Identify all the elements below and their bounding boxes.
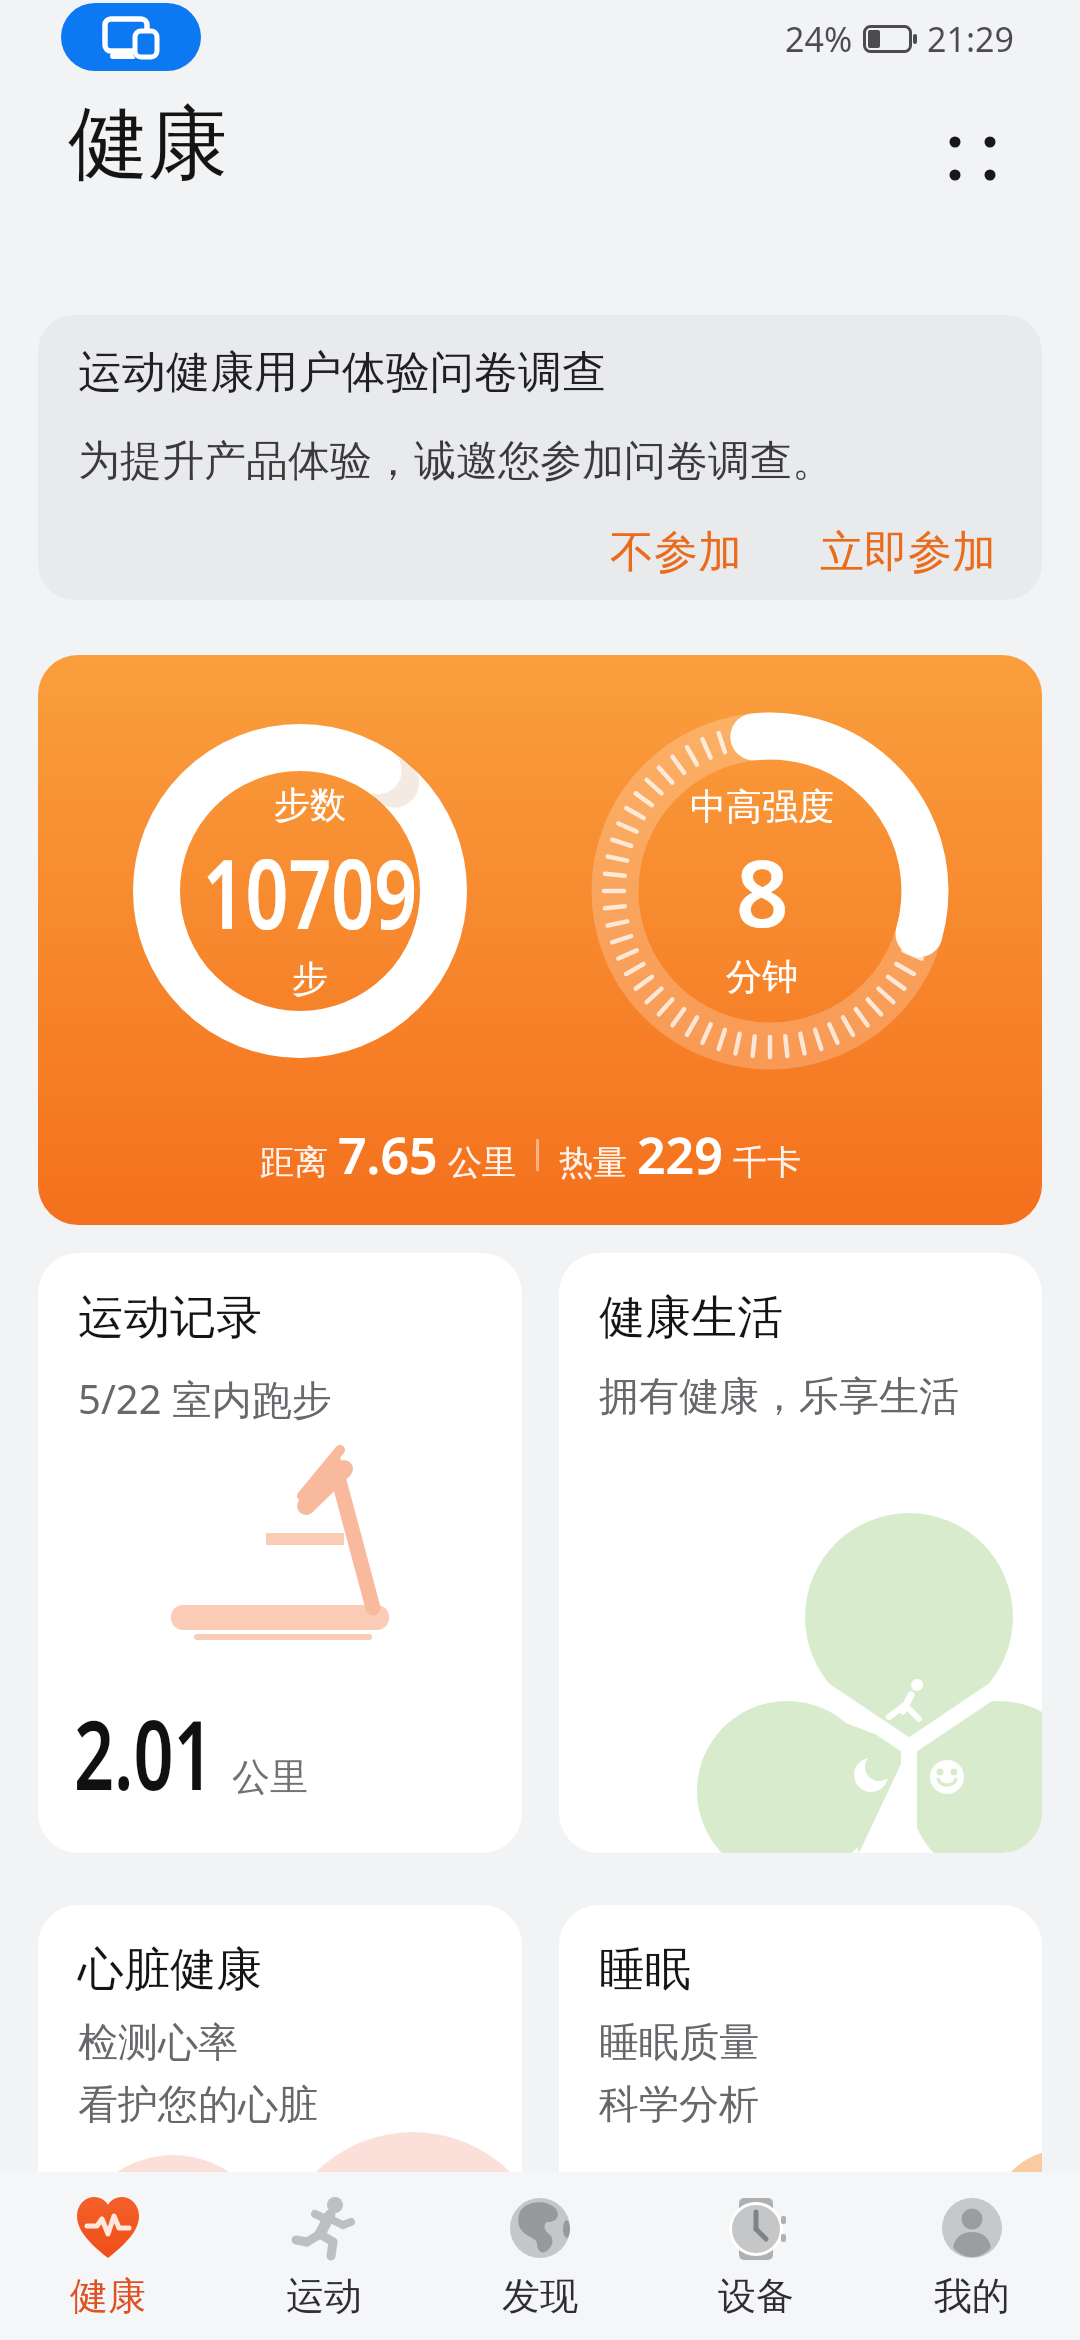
button[interactable]: 运动记录 [38, 1253, 522, 1853]
button[interactable]: 健康 [0, 2172, 216, 2340]
button[interactable] [61, 3, 201, 71]
staticText: 健康生活 [599, 1289, 783, 1347]
button[interactable]: 心脏健康 [38, 1905, 522, 2340]
staticText: 229 [637, 1121, 723, 1189]
button[interactable]: 睡眠 [559, 1905, 1042, 2340]
staticText: 检测心率 [78, 2017, 238, 2067]
staticText: 10709 [203, 827, 417, 956]
staticText: 科学分析 [599, 2079, 759, 2129]
button[interactable]: 步数 [38, 655, 1042, 1225]
staticText: 公里 [232, 1753, 308, 1801]
staticText: 公里 [448, 1141, 516, 1184]
staticText: 发现 [502, 2272, 578, 2320]
staticText: 步数 [274, 782, 346, 827]
staticText: 热量 [559, 1141, 627, 1184]
button[interactable] [938, 125, 1008, 195]
staticText: 睡眠质量 [599, 2017, 759, 2067]
button[interactable]: 立即参加 [820, 525, 996, 580]
staticText: 睡眠 [599, 1941, 691, 1999]
button[interactable]: 我的 [864, 2172, 1080, 2340]
staticText: 看护您的心脏 [78, 2079, 318, 2129]
staticText: 设备 [718, 2272, 794, 2320]
button[interactable]: 运动 [216, 2172, 432, 2340]
button[interactable]: 设备 [648, 2172, 864, 2340]
staticText: 分钟 [726, 954, 798, 999]
staticText: 5/22 室内跑步 [78, 1371, 332, 1426]
staticText: 运动 [286, 2272, 362, 2320]
button[interactable]: 健康生活 [559, 1253, 1042, 1853]
staticText: 运动记录 [78, 1289, 262, 1347]
button[interactable]: 不参加 [610, 525, 742, 580]
staticText: 拥有健康，乐享生活 [599, 1371, 959, 1421]
staticText: 步 [292, 956, 328, 1001]
staticText: 2.01 [74, 1687, 214, 1818]
staticText: 21:29 [927, 16, 1014, 62]
staticText: 健康 [70, 2272, 146, 2320]
staticText: 8 [736, 829, 789, 954]
staticText: 中高强度 [690, 784, 834, 829]
staticText: 7.65 [338, 1121, 438, 1189]
staticText: 为提升产品体验，诚邀您参加问卷调查。 [78, 435, 834, 488]
button[interactable]: 发现 [432, 2172, 648, 2340]
staticText: 24% [785, 16, 853, 62]
staticText: 千卡 [733, 1141, 801, 1184]
staticText: 距离 [260, 1141, 328, 1184]
staticText: 运动健康用户体验问卷调查 [78, 345, 606, 400]
staticText: 我的 [934, 2272, 1010, 2320]
staticText: 健康 [68, 94, 228, 195]
staticText: 心脏健康 [78, 1941, 262, 1999]
